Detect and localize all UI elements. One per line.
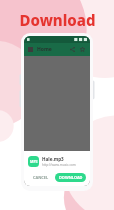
staticText: MP3 (30, 159, 38, 164)
button[interactable]: DOWNLOAD (55, 173, 86, 182)
button[interactable]: Menu (27, 46, 34, 53)
staticText: CANCEL (33, 175, 49, 180)
button[interactable]: Favorite (78, 45, 87, 54)
staticText: Home (37, 46, 52, 53)
button[interactable]: Share (68, 45, 77, 54)
staticText: DOWNLOAD (59, 175, 83, 180)
button[interactable]: CANCEL (28, 173, 53, 182)
staticText: Download (19, 10, 96, 30)
staticText: http://www.music.com (42, 163, 76, 167)
staticText: Hale.mp3 (42, 156, 64, 162)
